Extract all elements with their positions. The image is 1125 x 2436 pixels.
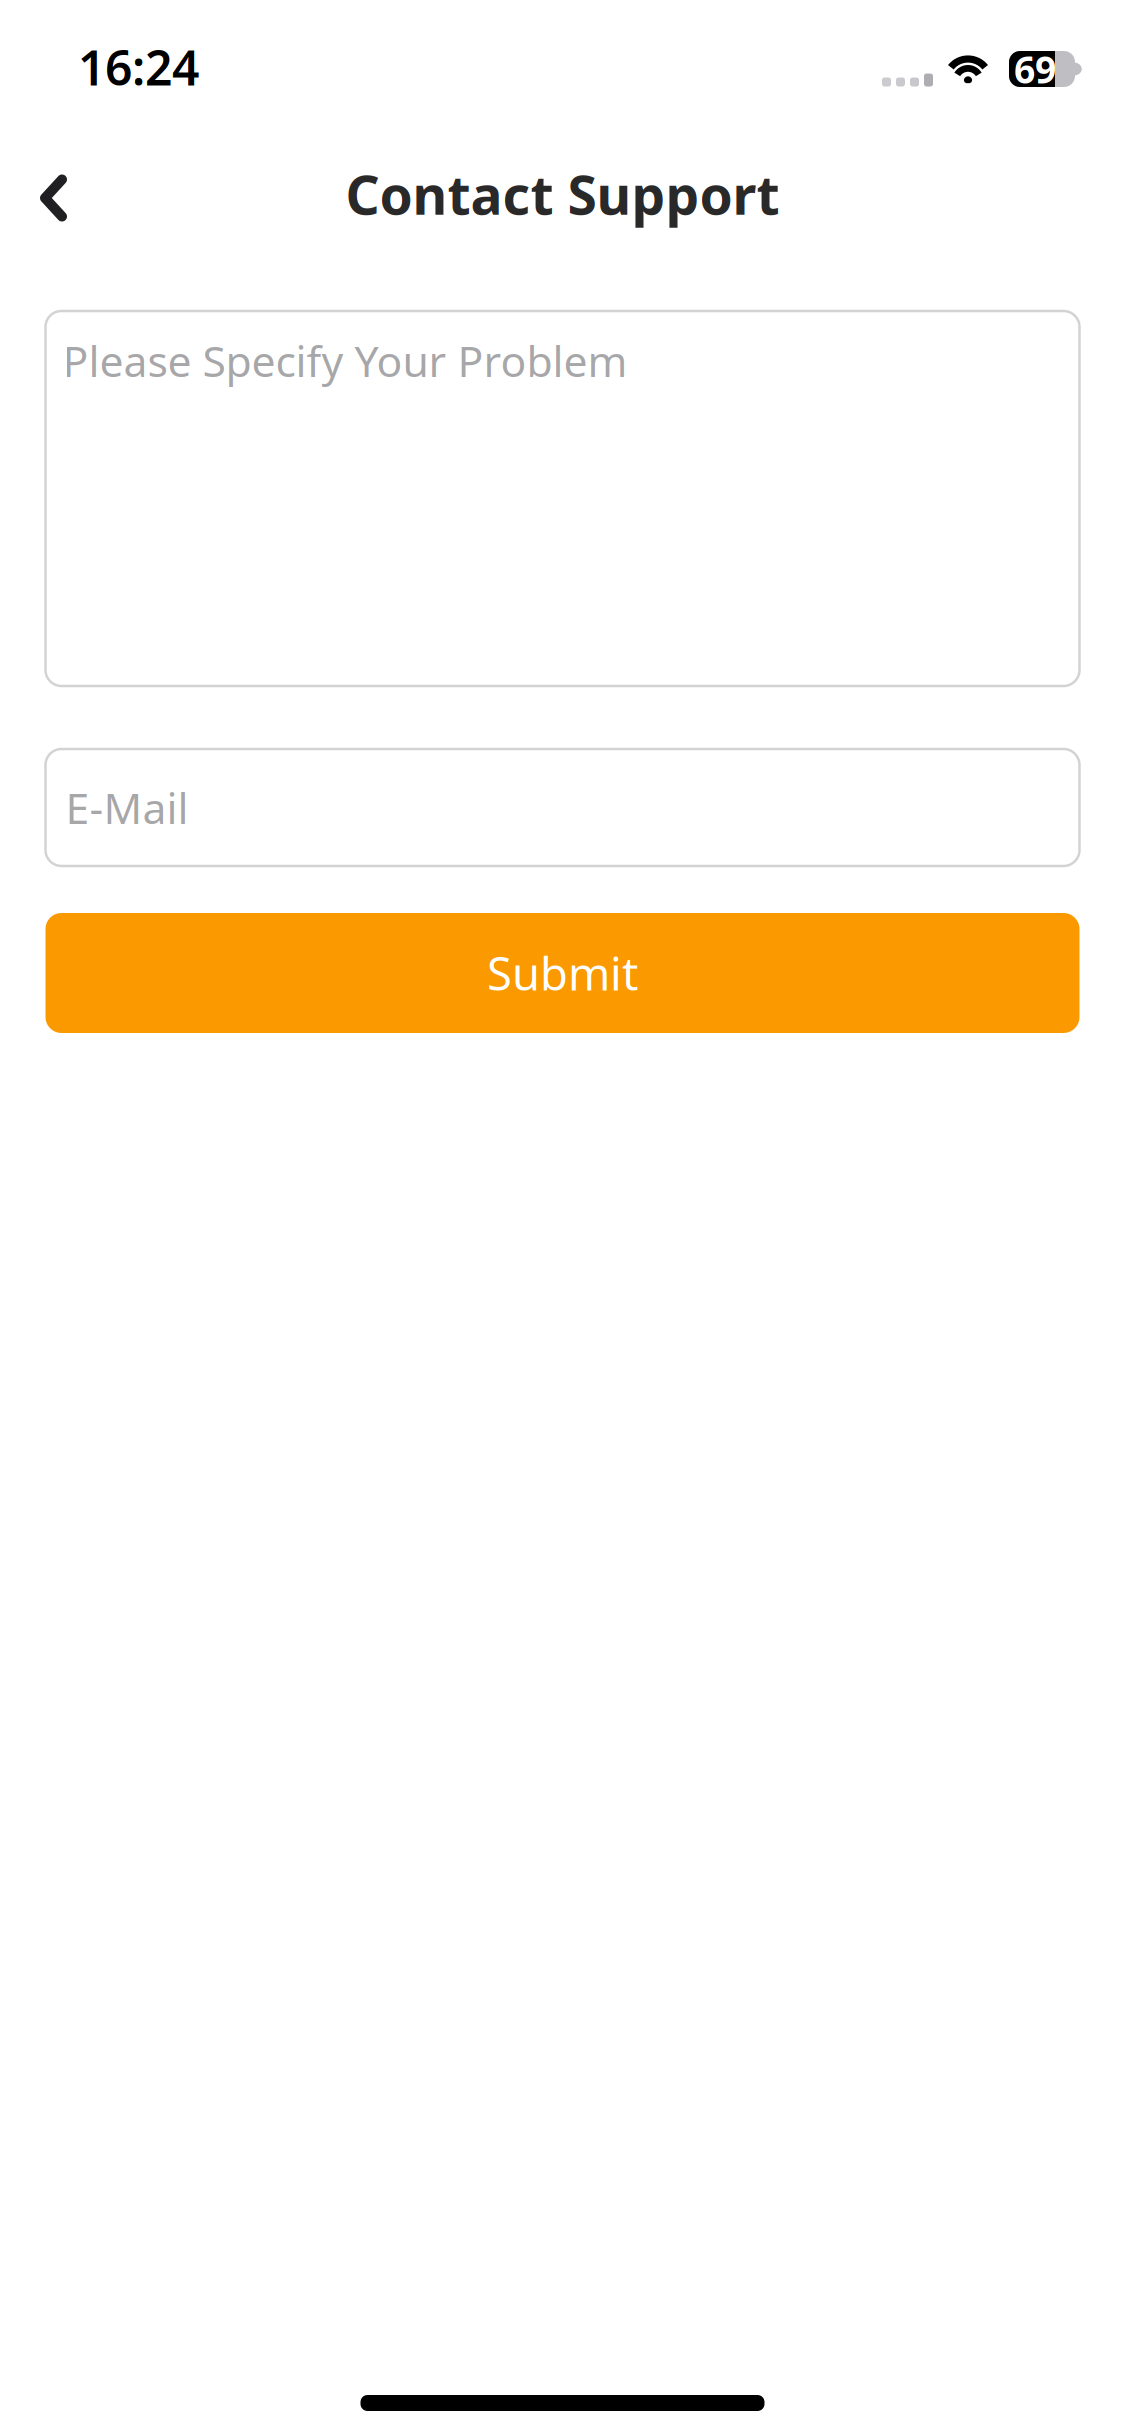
staticText: Submit xyxy=(487,943,638,1003)
staticText: 16:24 xyxy=(78,35,199,99)
staticText: E-Mail xyxy=(65,779,188,836)
staticText: Please Specify Your Problem xyxy=(62,332,627,389)
button[interactable]: Please Specify Your Problem xyxy=(45,311,1079,686)
staticText: 69 xyxy=(1014,44,1056,94)
button[interactable]: Submit xyxy=(45,913,1079,1033)
staticText: Contact Support xyxy=(345,159,779,229)
button[interactable]: Back xyxy=(0,146,100,241)
button[interactable]: E-Mail xyxy=(45,749,1079,866)
